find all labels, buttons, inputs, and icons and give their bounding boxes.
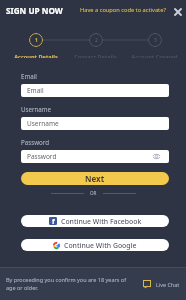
button[interactable]: 1 (6, 20, 66, 58)
staticText: 2 (95, 37, 98, 44)
staticText: age or older. (6, 284, 39, 291)
button[interactable]: Next (21, 172, 169, 185)
staticText: Password (27, 152, 152, 161)
button[interactable]: f (21, 215, 169, 227)
staticText: Next (85, 173, 105, 184)
button[interactable]: Email (21, 84, 169, 97)
staticText: 1 (35, 37, 38, 44)
staticText: Contact Details (74, 53, 117, 58)
staticText: Password (21, 138, 49, 146)
staticText: Email (27, 86, 165, 95)
button[interactable]: Username (21, 117, 169, 130)
button[interactable]: Show password (152, 152, 161, 161)
staticText: Username (27, 119, 165, 128)
staticText: By proceeding you confirm you are 18 yea… (6, 276, 127, 283)
staticText: Live Chat (156, 281, 180, 288)
staticText: SIGN UP NOW (6, 5, 63, 16)
button[interactable]: Password (21, 150, 169, 163)
button[interactable]: Have a coupon code to activate? (78, 4, 168, 16)
staticText: Have a coupon code to activate? (80, 6, 166, 14)
staticText: 3 (154, 37, 157, 44)
button[interactable]: 2 (66, 20, 125, 58)
button[interactable]: Close (172, 6, 184, 18)
staticText: Continue With Facebook (61, 217, 142, 226)
staticText: Continue With Google (64, 241, 137, 250)
staticText: OR (90, 190, 97, 196)
staticText: Account Details (14, 53, 58, 58)
staticText: Email (21, 72, 37, 80)
staticText: Username (21, 105, 52, 113)
button[interactable]: Live Chat (143, 280, 180, 288)
button[interactable]: Continue With Google (21, 239, 169, 251)
button[interactable]: 3 (125, 20, 184, 58)
staticText: f (52, 217, 55, 225)
staticText: Account Created (131, 53, 178, 58)
